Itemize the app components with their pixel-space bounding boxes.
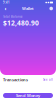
staticText: ‹ [4, 5, 6, 12]
staticText: Transactions [3, 77, 28, 82]
staticText: See all [43, 78, 53, 81]
button[interactable]: Send Money [3, 93, 53, 98]
staticText: $12,480.90 [3, 18, 39, 27]
button[interactable]: See all [43, 78, 53, 81]
staticText: Send Money [16, 93, 40, 98]
staticText: Wallet [22, 6, 34, 11]
staticText: 9:41 [3, 1, 10, 4]
staticText: Total Balance [3, 15, 23, 18]
button[interactable]: Back [3, 6, 8, 11]
button[interactable]: Profile [49, 7, 53, 10]
